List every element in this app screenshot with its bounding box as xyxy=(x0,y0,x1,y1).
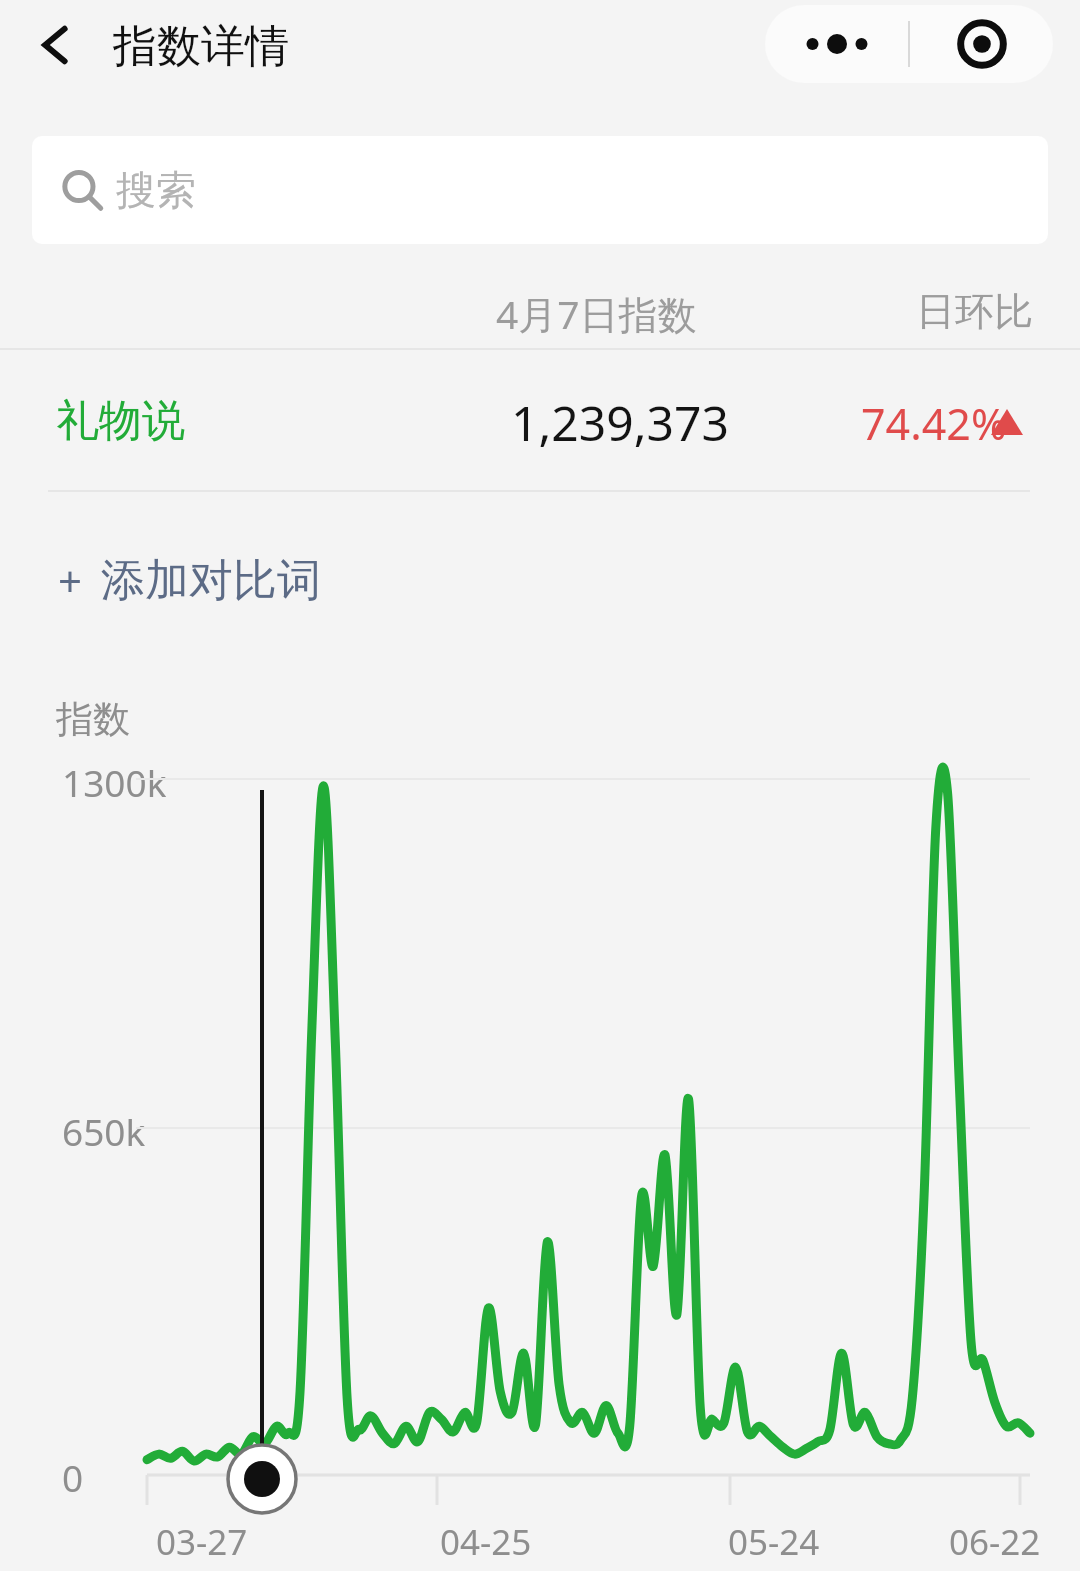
staticText: 指数 xyxy=(56,696,130,743)
staticText: 指数详情 xyxy=(113,19,289,74)
staticText: 04-25 xyxy=(440,1518,532,1566)
staticText: 650k xyxy=(62,1106,146,1156)
staticText: 06-22 xyxy=(949,1518,1041,1566)
button[interactable]: More options xyxy=(765,5,908,83)
staticText: 0 xyxy=(62,1452,84,1502)
staticText: 添加对比词 xyxy=(101,553,321,608)
staticText: 搜索 xyxy=(116,165,196,215)
button[interactable]: Back xyxy=(22,11,90,79)
staticText: 74.42% xyxy=(861,394,1007,453)
staticText: 1,239,373 xyxy=(511,390,729,455)
staticText: + xyxy=(58,552,83,609)
staticText: 03-27 xyxy=(156,1518,248,1566)
button[interactable]: 搜索 xyxy=(32,136,1048,244)
button[interactable]: + xyxy=(46,540,336,620)
staticText: 日环比 xyxy=(916,287,1033,336)
button[interactable]: 礼物说 xyxy=(0,350,1080,490)
staticText: 4月7日指数 xyxy=(496,287,697,340)
staticText: 礼物说 xyxy=(56,394,185,448)
button[interactable]: Close mini program xyxy=(910,5,1053,83)
staticText: 1300k xyxy=(62,757,167,807)
staticText: 05-24 xyxy=(728,1518,820,1566)
